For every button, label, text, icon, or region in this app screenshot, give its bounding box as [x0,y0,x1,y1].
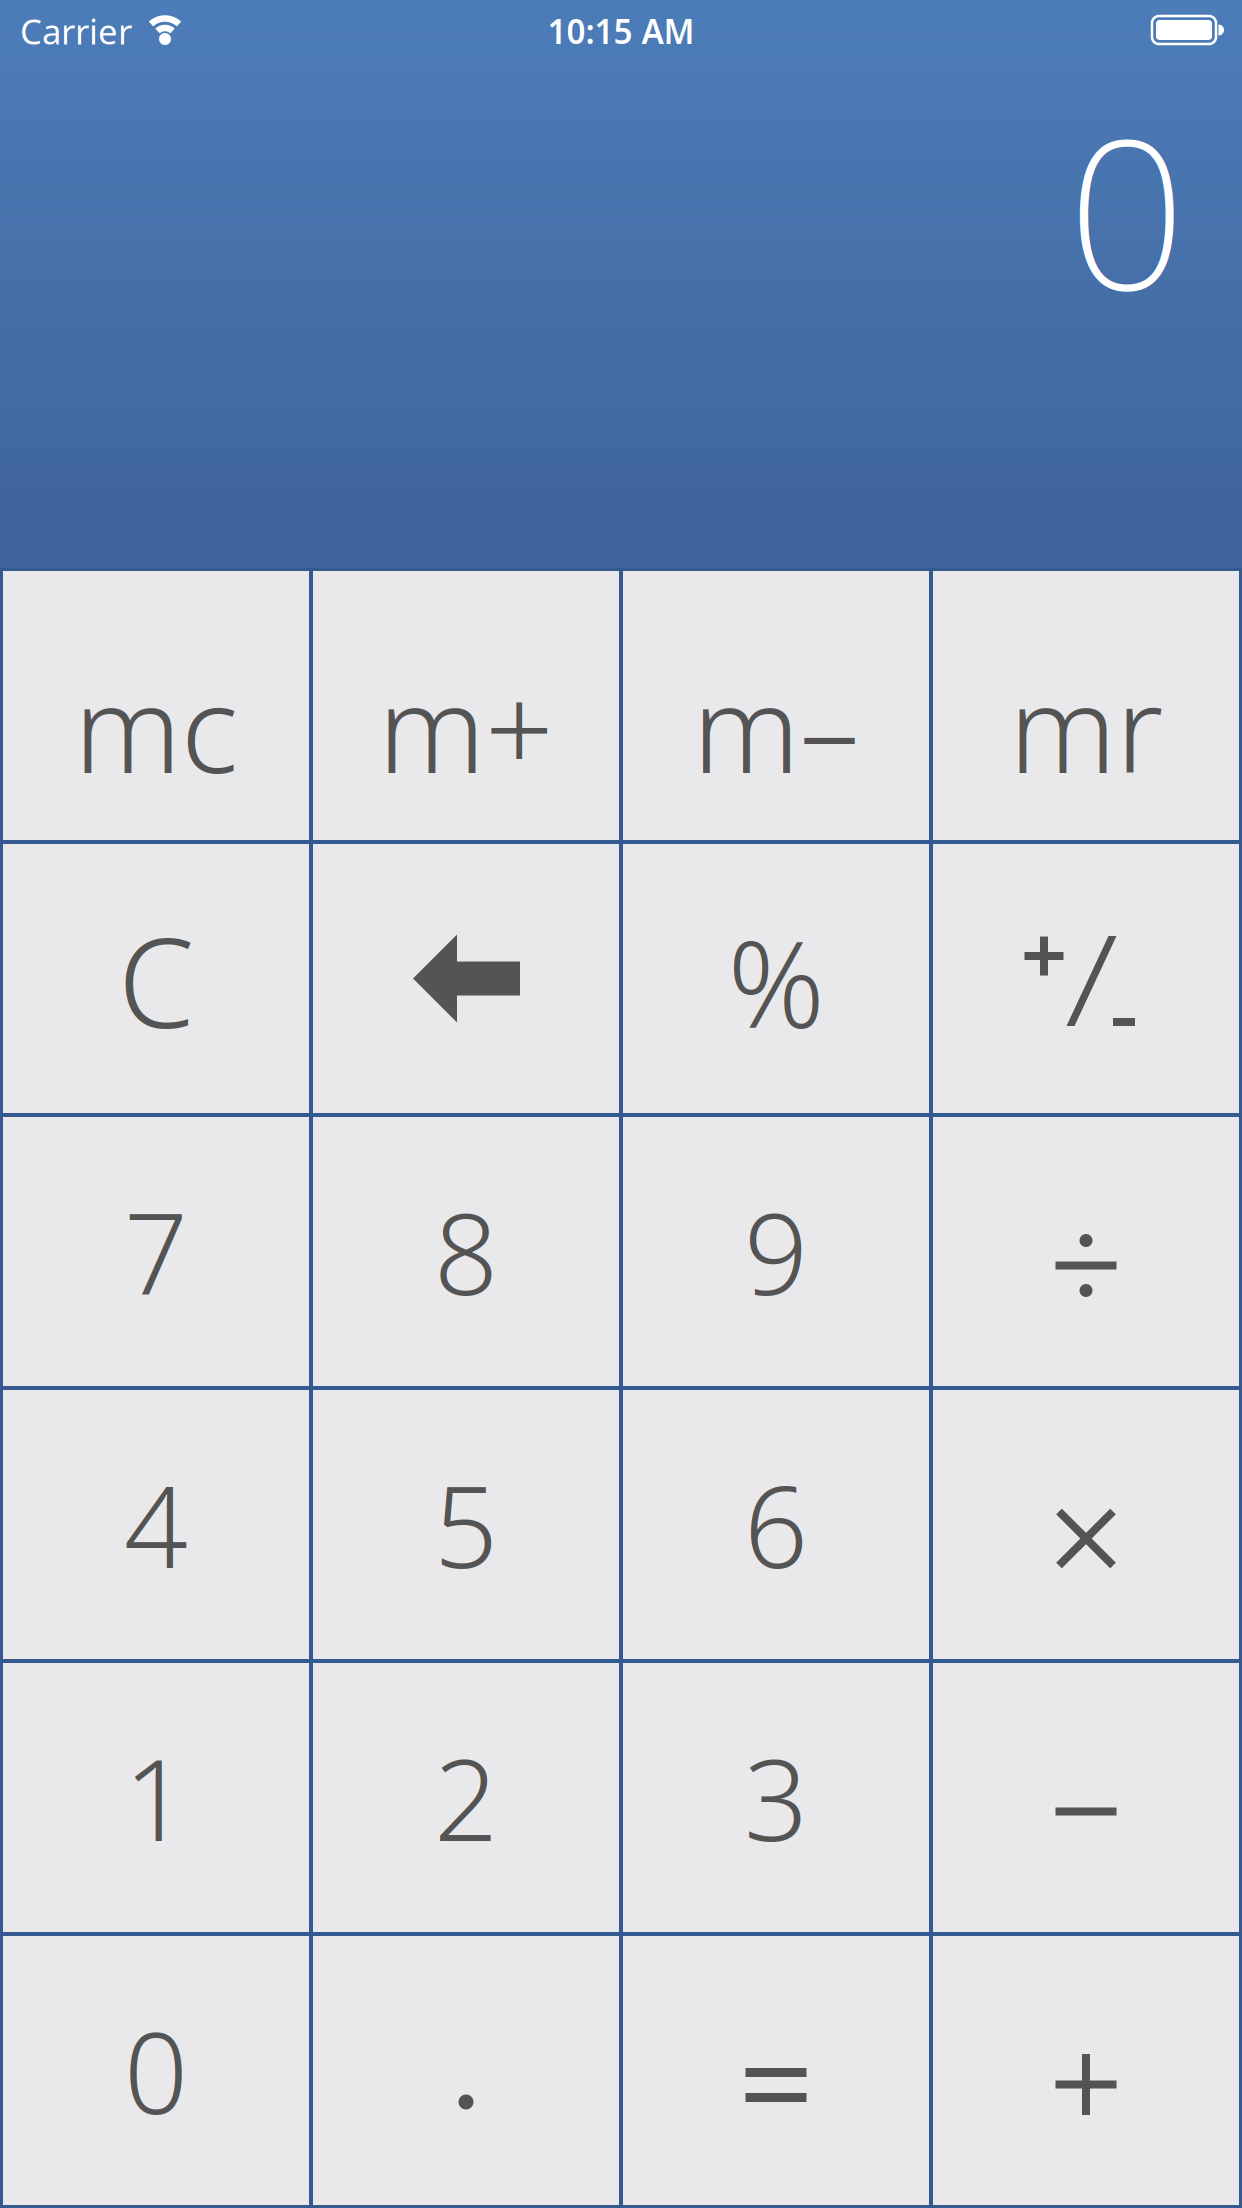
staticText: 2 [434,1723,498,1872]
button[interactable]: m– [623,571,929,840]
staticText: 0 [1067,71,1186,347]
staticText: m– [692,647,859,806]
button[interactable] [933,1390,1239,1659]
button[interactable]: mc [3,571,309,840]
button[interactable]: 5 [313,1390,619,1659]
staticText: 7 [124,1177,188,1326]
staticText: 9 [744,1177,808,1326]
staticText: % [727,902,824,1061]
button[interactable]: 1 [3,1663,309,1932]
button[interactable]: 6 [623,1390,929,1659]
staticText: 6 [744,1450,808,1599]
button[interactable] [313,1936,619,2205]
staticText: m+ [378,647,554,806]
button[interactable] [313,844,619,1113]
button[interactable] [933,1936,1239,2205]
staticText: 1 [124,1723,188,1872]
staticText: 0 [124,1996,188,2145]
staticText: 10:15 AM [547,9,694,53]
button[interactable] [933,1663,1239,1932]
staticText: 4 [124,1450,188,1599]
staticText: 5 [434,1450,498,1599]
button[interactable]: 8 [313,1117,619,1386]
button[interactable]: 2 [313,1663,619,1932]
button[interactable]: 4 [3,1390,309,1659]
button[interactable]: C [3,844,309,1113]
staticText: mc [74,647,238,806]
button[interactable]: 0 [3,1936,309,2205]
button[interactable] [933,844,1239,1113]
button[interactable] [623,1936,929,2205]
staticText: C [118,899,194,1062]
button[interactable]: 7 [3,1117,309,1386]
staticText: 8 [434,1177,498,1326]
button[interactable] [933,1117,1239,1386]
button[interactable]: % [623,844,929,1113]
button[interactable]: m+ [313,571,619,840]
button[interactable]: 3 [623,1663,929,1932]
staticText: 3 [744,1723,808,1872]
staticText: Carrier [20,8,132,54]
button[interactable]: mr [933,571,1239,840]
button[interactable]: 9 [623,1117,929,1386]
staticText: mr [1009,647,1163,806]
